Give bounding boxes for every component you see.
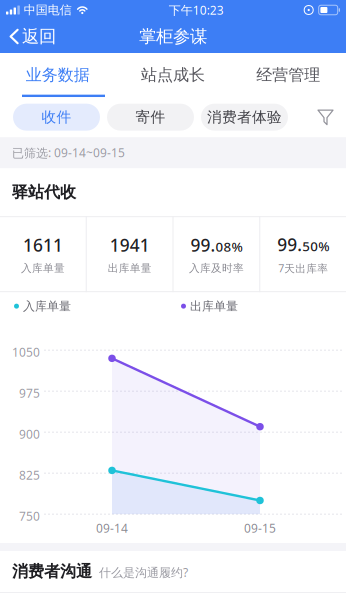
button[interactable]: 返回	[0, 21, 66, 52]
button[interactable]: 收件	[13, 104, 100, 131]
staticText: 50%	[302, 237, 329, 255]
staticText: 1941	[110, 234, 150, 257]
staticText: 99.	[190, 234, 215, 257]
button[interactable]: 寄件	[107, 104, 194, 131]
staticText: 经营管理	[256, 65, 320, 85]
staticText: 825	[19, 467, 40, 483]
button[interactable]: 站点成长	[115, 53, 231, 95]
staticText: 收件	[41, 108, 71, 126]
staticText: 返回	[22, 26, 56, 47]
button[interactable]: 经营管理	[231, 53, 346, 95]
staticText: 900	[19, 426, 40, 442]
staticText: 入库单量	[23, 299, 71, 313]
staticText: 09-15	[244, 520, 276, 536]
button[interactable]: 业务数据	[0, 53, 115, 95]
staticText: 1050	[12, 344, 40, 360]
staticText: 什么是沟通履约?	[99, 564, 188, 580]
staticText: 入库及时率	[189, 262, 244, 275]
staticText: 入库单量	[21, 262, 65, 275]
staticText: 975	[19, 385, 40, 401]
staticText: 下午10:23	[169, 2, 224, 18]
staticText: 08%	[215, 238, 242, 255]
staticText: 出库单量	[108, 262, 152, 275]
button[interactable]: 消费者体验	[201, 104, 288, 131]
staticText: 750	[19, 508, 40, 524]
staticText: 业务数据	[26, 65, 90, 85]
staticText: 消费者沟通	[12, 562, 92, 581]
staticText: 掌柜参谋	[139, 26, 207, 47]
staticText: 寄件	[135, 108, 165, 126]
staticText: 7天出库率	[278, 261, 328, 275]
staticText: 站点成长	[141, 65, 205, 85]
staticText: 1611	[23, 234, 63, 257]
staticText: 已筛选: 09-14~09-15	[12, 145, 125, 161]
staticText: 99.	[277, 233, 302, 256]
staticText: 09-14	[96, 520, 128, 536]
staticText: 消费者体验	[207, 108, 282, 126]
staticText: 出库单量	[190, 299, 238, 313]
staticText: 驿站代收	[12, 182, 76, 202]
staticText: 中国电信	[24, 3, 72, 17]
button[interactable]: 筛选	[314, 109, 337, 126]
